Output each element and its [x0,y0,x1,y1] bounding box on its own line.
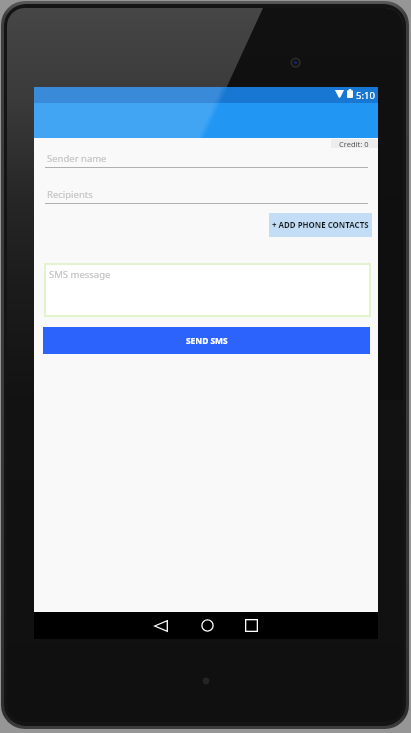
staticText: Recipients [47,188,93,201]
staticText: 5:10 [356,89,375,102]
button[interactable]: Recent apps [233,612,270,639]
button[interactable]: SMS message [44,263,371,317]
staticText: Credit: 0 [339,139,369,148]
button[interactable]: + ADD PHONE CONTACTS [269,213,372,237]
button[interactable]: SEND SMS [43,327,370,354]
staticText: + ADD PHONE CONTACTS [272,220,369,231]
button[interactable]: Home [189,612,226,639]
staticText: SEND SMS [186,335,228,346]
staticText: Sender name [47,152,107,165]
staticText: SMS message [49,268,111,281]
button[interactable]: Back [142,612,179,639]
